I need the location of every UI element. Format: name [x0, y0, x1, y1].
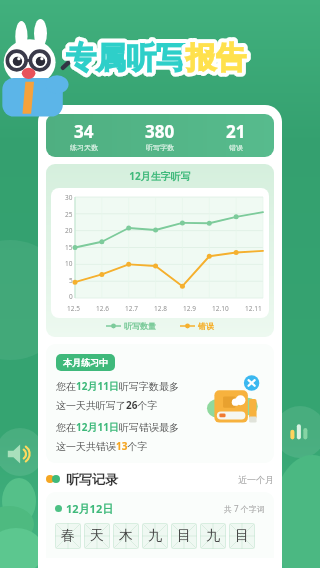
staticText: 本月练习中 [63, 357, 108, 368]
staticText: 34 [74, 120, 94, 143]
staticText: 共 7 个字词 [224, 503, 265, 514]
staticText: 12.10 [212, 304, 229, 313]
staticText: 您在12月11日听写字数最多 [56, 379, 179, 393]
staticText: 听写数量 [124, 321, 156, 331]
staticText: 这一天共听写了26个字 [56, 398, 158, 412]
staticText: 报告 [186, 39, 246, 77]
button[interactable]: 九 [200, 523, 226, 549]
staticText: 380 [145, 120, 175, 143]
staticText: 报告 [186, 39, 246, 77]
staticText: 练习天数 [70, 143, 98, 152]
staticText: 专属听写 [66, 39, 186, 77]
staticText: 12.7 [125, 304, 138, 313]
button[interactable]: 天 [84, 523, 110, 549]
staticText: 12.11 [245, 304, 262, 313]
button[interactable]: 春 [55, 523, 81, 549]
button[interactable]: 目 [229, 523, 255, 549]
button[interactable]: Sound [5, 440, 33, 468]
staticText: 12.8 [154, 304, 167, 313]
staticText: 12月12日 [66, 501, 114, 516]
staticText: 12.6 [96, 304, 109, 313]
staticText: 九 [148, 527, 162, 545]
staticText: 20 [65, 226, 73, 235]
staticText: 12.9 [183, 304, 196, 313]
button[interactable]: 目 [171, 523, 197, 549]
staticText: 21 [226, 120, 246, 143]
staticText: 12月生字听写 [51, 169, 269, 183]
staticText: 您在12月11日听写错误最多 [56, 420, 179, 434]
staticText: 5 [69, 276, 73, 285]
staticText: 30 [65, 193, 73, 202]
button[interactable]: 木 [113, 523, 139, 549]
staticText: 这一天共错误13个字 [56, 439, 148, 453]
staticText: 25 [65, 210, 73, 219]
button[interactable]: 本月练习中 [56, 354, 264, 453]
button[interactable]: 错误 [180, 321, 214, 331]
button[interactable]: 九 [142, 523, 168, 549]
button[interactable]: 听写数量 [106, 321, 156, 331]
staticText: 木 [119, 527, 133, 545]
staticText: 目 [177, 527, 191, 545]
button[interactable]: 12月12日 [55, 501, 265, 549]
button[interactable]: 听写记录 [46, 471, 274, 487]
button[interactable]: 34 [46, 114, 274, 157]
staticText: 目 [235, 527, 249, 545]
staticText: 0 [69, 292, 73, 301]
button[interactable]: Statistics [287, 419, 311, 443]
staticText: 错误 [229, 143, 243, 152]
staticText: 听写记录 [66, 471, 118, 487]
staticText: 10 [65, 259, 73, 268]
staticText: 专属听写 [66, 39, 186, 77]
staticText: 听写字数 [146, 143, 174, 152]
staticText: 近一个月 [238, 474, 274, 485]
staticText: 九 [206, 527, 220, 545]
staticText: 15 [65, 243, 73, 252]
staticText: 春 [61, 527, 75, 545]
staticText: 天 [90, 527, 104, 545]
staticText: 错误 [198, 321, 214, 331]
staticText: 12.5 [67, 304, 80, 313]
